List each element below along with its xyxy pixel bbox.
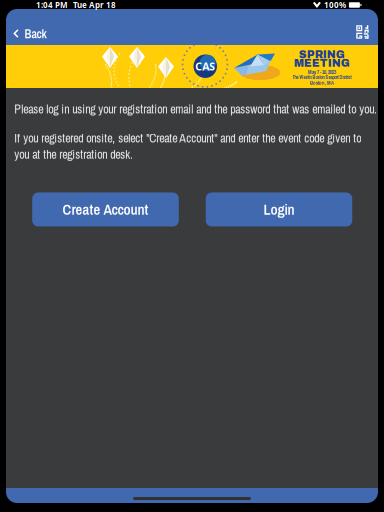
staticText: 1:04 PM [36, 0, 68, 10]
staticText: CAS [195, 59, 215, 73]
button[interactable]: Scan QR code [348, 9, 378, 45]
staticText: If you registered onsite, select "Create… [14, 130, 361, 162]
staticText: Boston, MA [310, 79, 334, 86]
button[interactable]: Back [6, 9, 54, 45]
staticText: Login [263, 200, 294, 219]
staticText: Back [24, 26, 46, 42]
button[interactable]: Login [206, 192, 352, 226]
staticText: MEETING [294, 57, 350, 69]
staticText: The Westin Boston Seaport District [292, 74, 351, 80]
staticText: 100% [324, 0, 346, 10]
staticText: Create Account [62, 200, 148, 219]
staticText: SPRING [299, 49, 345, 61]
button[interactable]: Create Account [32, 192, 179, 226]
staticText: Tue Apr 18 [73, 0, 116, 10]
staticText: May 7 - 10, 2023 [308, 68, 336, 76]
staticText: Please log in using your registration em… [14, 101, 377, 117]
